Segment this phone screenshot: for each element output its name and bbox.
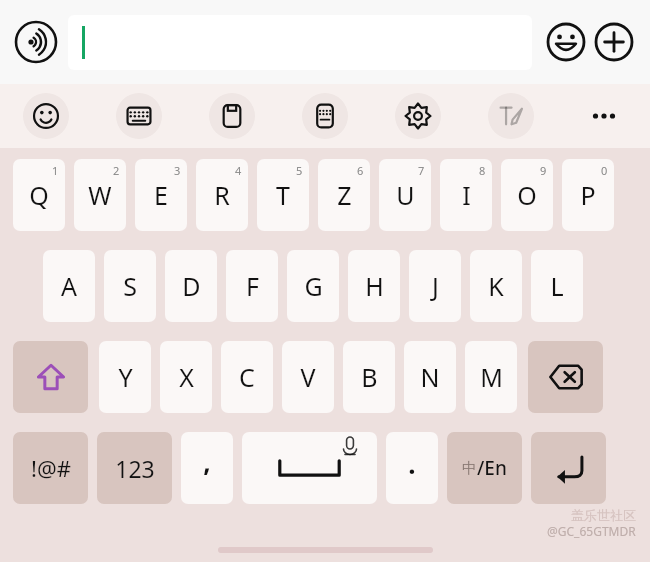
button[interactable]: V (282, 341, 334, 413)
button[interactable]: !@# (13, 432, 88, 504)
button[interactable]: Space (242, 432, 377, 504)
staticText: , (203, 444, 211, 479)
button[interactable]: Emoji (542, 18, 590, 66)
button[interactable]: X (160, 341, 212, 413)
staticText: D (182, 269, 201, 303)
staticText: 7 (418, 163, 425, 178)
button[interactable]: B (343, 341, 395, 413)
button[interactable]: N (404, 341, 456, 413)
staticText: L (550, 269, 564, 303)
staticText: F (246, 269, 259, 303)
button[interactable]: E (135, 159, 187, 231)
staticText: G (304, 269, 323, 303)
button[interactable]: D (165, 250, 217, 322)
staticText: J (432, 269, 439, 303)
staticText: Q (29, 178, 49, 212)
button[interactable]: S (104, 250, 156, 322)
button[interactable]: C (221, 341, 273, 413)
staticText: M (480, 360, 503, 394)
staticText: @GC_65GTMDR (547, 523, 636, 539)
button[interactable]: Z (318, 159, 370, 231)
button[interactable]: Settings (395, 93, 441, 139)
button[interactable]: Shift (13, 341, 88, 413)
button[interactable]: More options (581, 93, 627, 139)
button[interactable]: One-hand mode (302, 93, 348, 139)
button[interactable]: R (196, 159, 248, 231)
button[interactable]: F (226, 250, 278, 322)
staticText: 4 (235, 163, 242, 178)
staticText: Z (337, 178, 352, 212)
staticText: U (396, 178, 415, 212)
button[interactable]: Enter (531, 432, 606, 504)
button[interactable]: U (379, 159, 431, 231)
staticText: A (61, 269, 77, 303)
button[interactable]: O (501, 159, 553, 231)
staticText: P (580, 178, 596, 212)
button[interactable]: , (181, 432, 233, 504)
button[interactable]: H (348, 250, 400, 322)
button[interactable]: G (287, 250, 339, 322)
button[interactable]: Voice input (12, 18, 60, 66)
button[interactable]: Add (590, 18, 638, 66)
button[interactable]: W (74, 159, 126, 231)
button[interactable]: 123 (97, 432, 172, 504)
staticText: R (214, 178, 230, 212)
staticText: . (408, 446, 416, 481)
staticText: 2 (113, 163, 120, 178)
staticText: 5 (296, 163, 303, 178)
staticText: E (154, 178, 168, 212)
staticText: !@# (31, 453, 71, 483)
staticText: X (179, 360, 194, 394)
staticText: W (88, 178, 112, 212)
button[interactable]: L (531, 250, 583, 322)
button[interactable]: Q (13, 159, 65, 231)
button[interactable]: M (465, 341, 517, 413)
staticText: 盖乐世社区 (571, 507, 636, 523)
button[interactable]: . (386, 432, 438, 504)
staticText: 中 (462, 459, 477, 478)
staticText: O (517, 178, 537, 212)
staticText: S (123, 269, 137, 303)
button[interactable] (68, 15, 532, 70)
button[interactable]: Clipboard (209, 93, 255, 139)
staticText: /En (477, 455, 507, 481)
button[interactable]: J (409, 250, 461, 322)
staticText: 3 (174, 163, 181, 178)
button[interactable]: Y (99, 341, 151, 413)
staticText: 1 (52, 163, 59, 178)
button[interactable]: I (440, 159, 492, 231)
button[interactable]: P (562, 159, 614, 231)
button[interactable]: Backspace (528, 341, 603, 413)
button[interactable]: 中 (447, 432, 522, 504)
button[interactable]: T (257, 159, 309, 231)
staticText: 123 (115, 453, 155, 484)
staticText: K (488, 269, 504, 303)
staticText: 8 (479, 163, 486, 178)
staticText: V (300, 360, 316, 394)
staticText: 6 (357, 163, 364, 178)
button[interactable]: Handwriting (488, 93, 534, 139)
button[interactable]: Stickers (23, 93, 69, 139)
staticText: H (365, 269, 384, 303)
button[interactable]: Keyboard layout (116, 93, 162, 139)
staticText: B (361, 360, 378, 394)
staticText: N (420, 360, 440, 394)
staticText: 9 (540, 163, 547, 178)
staticText: 0 (601, 163, 608, 178)
button[interactable]: A (43, 250, 95, 322)
staticText: I (462, 178, 471, 212)
staticText: C (239, 360, 255, 394)
button[interactable]: K (470, 250, 522, 322)
staticText: Y (118, 360, 133, 394)
staticText: T (276, 178, 290, 212)
